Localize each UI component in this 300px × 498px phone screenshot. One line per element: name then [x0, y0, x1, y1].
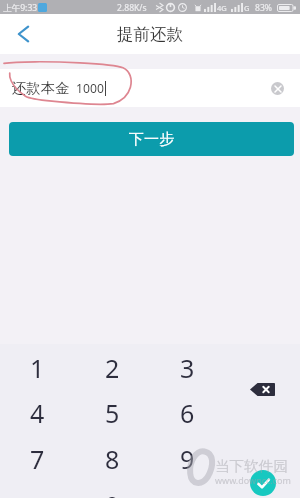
staticText: 下一步: [129, 130, 174, 149]
button[interactable]: [150, 482, 225, 498]
button[interactable]: 8: [75, 436, 150, 482]
button[interactable]: 4: [0, 390, 75, 436]
button[interactable]: 0: [75, 482, 150, 498]
staticText: 1000: [76, 80, 104, 97]
button[interactable]: 2: [75, 345, 150, 391]
button[interactable]: 9: [150, 436, 225, 482]
button[interactable]: Backspace: [225, 344, 300, 435]
staticText: 1: [30, 351, 45, 385]
staticText: 7: [30, 442, 45, 476]
button[interactable]: 下一步: [9, 122, 294, 156]
staticText: 还款本金: [12, 79, 70, 97]
button[interactable]: Back: [11, 21, 37, 47]
button[interactable]: 6: [150, 390, 225, 436]
button[interactable]: Confirm: [225, 435, 300, 498]
staticText: 4G: [217, 3, 227, 13]
button[interactable]: 3: [150, 345, 225, 391]
button[interactable]: 1: [0, 345, 75, 391]
staticText: 8: [105, 442, 120, 476]
staticText: 提前还款: [117, 24, 183, 45]
staticText: 2.88K/s: [117, 2, 147, 14]
staticText: 当下软件园: [215, 457, 288, 475]
button[interactable]: 5: [75, 390, 150, 436]
staticText: www.downcc.com: [215, 474, 291, 486]
staticText: 上午9:33: [3, 2, 38, 14]
staticText: 6: [180, 396, 195, 430]
staticText: 83%: [255, 2, 272, 14]
staticText: 5: [105, 396, 120, 430]
staticText: 0: [105, 488, 120, 498]
staticText: 4: [30, 396, 45, 430]
staticText: G: [244, 3, 250, 13]
button[interactable]: 7: [0, 436, 75, 482]
button[interactable]: Clear text: [271, 82, 284, 95]
staticText: 2: [105, 351, 120, 385]
staticText: 3: [180, 351, 195, 385]
staticText: 9: [180, 442, 195, 476]
